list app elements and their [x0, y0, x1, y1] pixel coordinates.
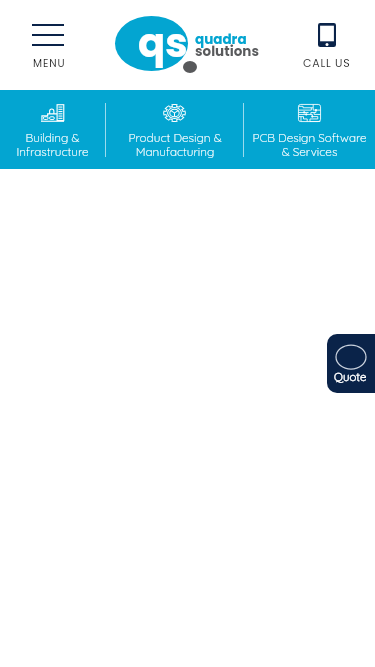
staticText: MENU [33, 56, 66, 71]
staticText: CALL US [303, 55, 351, 70]
button[interactable]: Product Design & Manufacturing [106, 90, 243, 169]
staticText: quadra [195, 30, 247, 49]
button[interactable]: PCB Design Software & Services [244, 90, 375, 169]
button[interactable]: Call us [299, 18, 355, 70]
button[interactable]: Quote [327, 334, 375, 393]
staticText: Product Design & Manufacturing [128, 130, 222, 159]
button[interactable]: Menu [22, 18, 74, 70]
staticText: qs [138, 15, 188, 71]
staticText: Building & Infrastructure [16, 130, 89, 159]
staticText: PCB Design Software & Services [252, 130, 367, 159]
staticText: solutions [195, 42, 259, 61]
staticText: Quote [334, 369, 367, 383]
button[interactable]: Building & Infrastructure [0, 90, 105, 169]
